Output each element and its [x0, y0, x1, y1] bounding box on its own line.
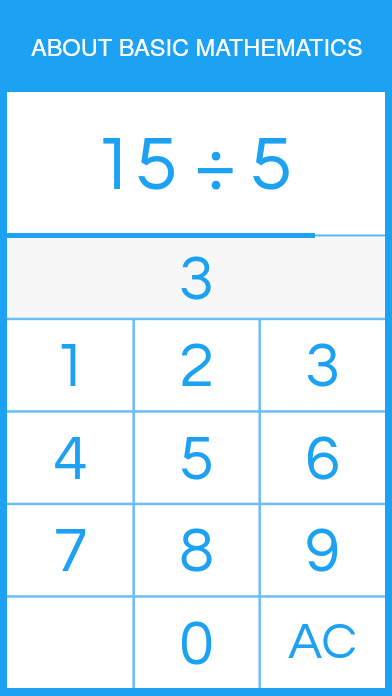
- staticText: 15: [93, 126, 178, 205]
- button[interactable]: AC: [259, 596, 385, 689]
- button[interactable]: 2: [133, 318, 259, 411]
- staticText: 7: [53, 519, 88, 584]
- staticText: 8: [179, 519, 214, 584]
- staticText: 9: [305, 519, 340, 584]
- staticText: 4: [53, 427, 88, 492]
- button[interactable]: 9: [259, 503, 385, 596]
- staticText: 1: [53, 334, 88, 399]
- button[interactable]: ABOUT BASIC MATHEMATICS: [20, 24, 372, 68]
- button[interactable]: [7, 596, 133, 689]
- staticText: 0: [179, 612, 214, 677]
- button[interactable]: 7: [7, 503, 133, 596]
- staticText: 5: [179, 427, 214, 492]
- button[interactable]: 5: [133, 411, 259, 504]
- button[interactable]: 4: [7, 411, 133, 504]
- button[interactable]: 3: [259, 318, 385, 411]
- staticText: 3: [179, 247, 214, 312]
- staticText: ABOUT BASIC MATHEMATICS: [31, 29, 363, 63]
- button[interactable]: 6: [259, 411, 385, 504]
- staticText: 6: [305, 427, 340, 492]
- staticText: 5: [250, 126, 293, 205]
- button[interactable]: 0: [133, 596, 259, 689]
- staticText: 3: [305, 334, 340, 399]
- staticText: 2: [179, 334, 214, 399]
- button[interactable]: 8: [133, 503, 259, 596]
- staticText: AC: [288, 616, 357, 669]
- button[interactable]: 1: [7, 318, 133, 411]
